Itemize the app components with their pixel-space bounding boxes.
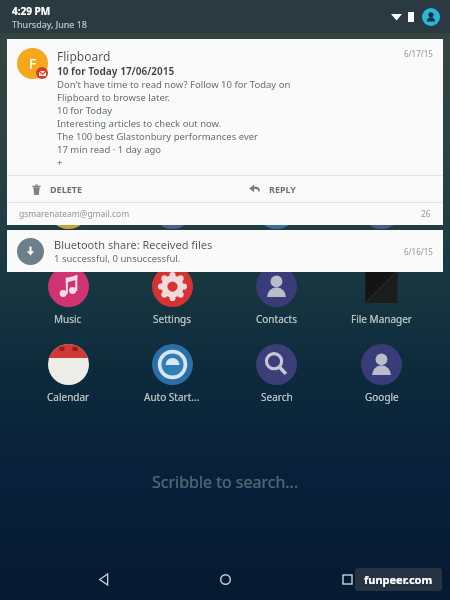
- button[interactable]: Recent apps: [328, 560, 366, 598]
- staticText: 10 for Today 17/06/2015: [57, 64, 175, 78]
- staticText: Google: [365, 390, 399, 404]
- button[interactable]: Music: [16, 264, 120, 328]
- button[interactable]: User profile: [422, 8, 440, 26]
- button[interactable]: Bluetooth share: Received files: [7, 230, 443, 272]
- staticText: Bluetooth share: Received files: [54, 237, 213, 252]
- staticText: 4:29 PM: [12, 4, 51, 18]
- staticText: +: [57, 156, 63, 169]
- button[interactable]: Email: [329, 186, 434, 250]
- staticText: gsmarenateam@gmail.com: [19, 208, 421, 220]
- button[interactable]: Search: [224, 342, 329, 406]
- button[interactable]: The Store: [120, 186, 224, 250]
- button[interactable]: Contacts: [224, 264, 329, 328]
- staticText: 17 min read · 1 day ago: [57, 143, 162, 156]
- button[interactable]: Settings: [120, 264, 224, 328]
- button[interactable]: Google: [329, 342, 434, 406]
- button[interactable]: Back: [84, 560, 122, 598]
- staticText: 4:29: [26, 60, 105, 114]
- staticText: 10 for Today: [57, 104, 113, 117]
- staticText: F: [29, 54, 37, 73]
- staticText: funpeer.com: [364, 572, 433, 587]
- staticText: Thursday, June 18: [12, 18, 88, 30]
- staticText: Search: [261, 390, 293, 404]
- button[interactable]: File Manager: [329, 264, 434, 328]
- staticText: DELETE: [50, 183, 82, 195]
- staticText: Settings: [153, 312, 192, 326]
- staticText: REPLY: [269, 183, 296, 195]
- button[interactable]: Calendar: [16, 342, 120, 406]
- staticText: The Store: [150, 234, 195, 248]
- button[interactable]: Home: [206, 560, 244, 598]
- button[interactable]: Browser: [224, 186, 329, 250]
- button[interactable]: Gallery: [16, 186, 120, 250]
- staticText: Interesting articles to check out now.: [57, 117, 222, 130]
- button[interactable]: REPLY: [225, 176, 443, 202]
- button[interactable]: F: [7, 39, 443, 225]
- staticText: 6/16/15: [404, 246, 433, 257]
- button[interactable]: Auto Start...: [120, 342, 224, 406]
- staticText: Music: [54, 312, 82, 326]
- staticText: 1 successful, 0 unsuccessful.: [54, 252, 181, 265]
- staticText: 6/17/15: [404, 48, 433, 59]
- staticText: Auto Start...: [144, 390, 200, 404]
- staticText: Thursday: [26, 116, 83, 134]
- staticText: Calendar: [47, 390, 90, 404]
- staticText: The 100 best Glastonbury performances ev…: [57, 130, 259, 143]
- staticText: Contacts: [256, 312, 297, 326]
- staticText: Flipboard: [57, 48, 404, 64]
- staticText: Gallery: [52, 234, 85, 248]
- staticText: Flipboard to browse later.: [57, 91, 170, 104]
- staticText: File Manager: [351, 312, 412, 326]
- staticText: 26: [421, 208, 431, 220]
- staticText: Scribble to search...: [152, 471, 299, 493]
- button[interactable]: DELETE: [7, 176, 225, 202]
- staticText: Don't have time to read now? Follow 10 f…: [57, 78, 291, 91]
